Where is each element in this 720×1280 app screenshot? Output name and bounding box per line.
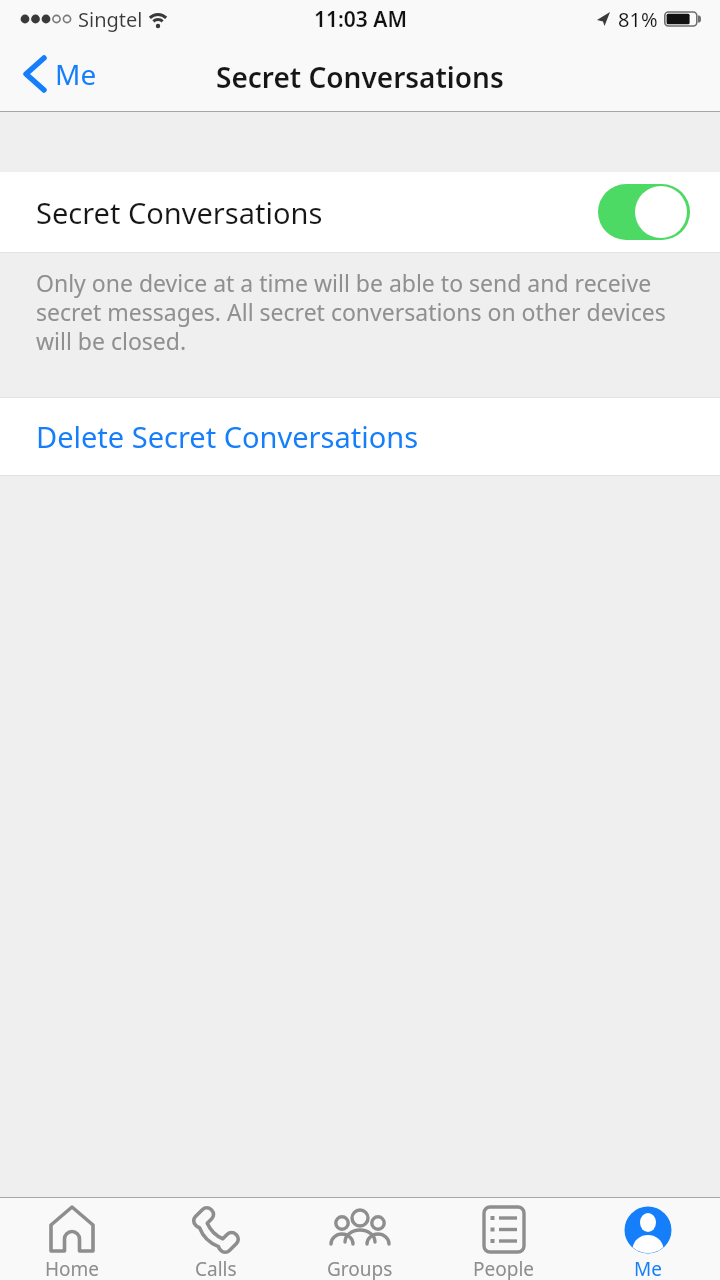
staticText: Calls: [195, 1256, 237, 1280]
staticText: 81%: [618, 6, 658, 33]
staticText: People: [473, 1256, 535, 1280]
button[interactable]: Delete Secret Conversations: [0, 398, 720, 475]
button[interactable]: Home: [0, 1198, 144, 1280]
staticText: 11:03 AM: [314, 5, 407, 34]
staticText: Delete Secret Conversations: [36, 417, 419, 456]
staticText: Secret Conversations: [216, 58, 504, 96]
staticText: Groups: [327, 1256, 393, 1280]
button[interactable]: Calls: [144, 1198, 288, 1280]
button[interactable]: Me: [20, 48, 97, 100]
staticText: Home: [45, 1256, 100, 1280]
staticText: Me: [634, 1256, 662, 1280]
button[interactable]: Secret Conversations: [0, 172, 720, 252]
staticText: Singtel: [78, 6, 143, 33]
button[interactable]: Me: [576, 1198, 720, 1280]
button[interactable]: Groups: [288, 1198, 432, 1280]
staticText: Only one device at a time will be able t…: [36, 267, 666, 357]
button[interactable]: People: [432, 1198, 576, 1280]
staticText: Me: [55, 55, 97, 93]
staticText: Secret Conversations: [36, 193, 323, 232]
